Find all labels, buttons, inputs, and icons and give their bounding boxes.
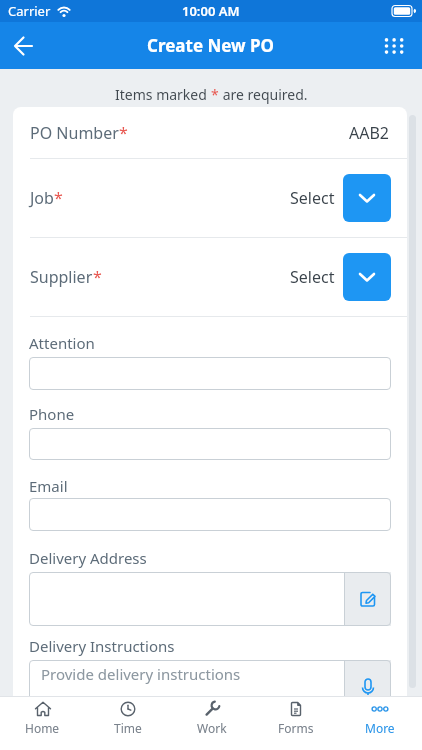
- staticText: Carrier: [8, 2, 51, 20]
- staticText: Phone: [29, 404, 75, 424]
- staticText: 10:00 AM: [182, 2, 240, 20]
- staticText: Home: [25, 720, 60, 736]
- staticText: Select: [290, 187, 335, 209]
- button[interactable]: [343, 253, 391, 301]
- staticText: Email: [29, 476, 68, 496]
- staticText: Create New PO: [147, 34, 275, 57]
- staticText: Work: [197, 720, 227, 736]
- button[interactable]: [29, 572, 391, 626]
- staticText: Items marked: [115, 85, 211, 104]
- staticText: AAB2: [349, 122, 390, 144]
- button[interactable]: More: [338, 697, 422, 750]
- staticText: More: [365, 720, 395, 736]
- button[interactable]: Forms: [254, 697, 338, 750]
- staticText: are required.: [219, 85, 308, 104]
- button[interactable]: [4, 26, 44, 66]
- staticText: Forms: [278, 720, 314, 736]
- staticText: PO Number: [30, 122, 119, 144]
- button[interactable]: Job: [30, 159, 391, 237]
- button[interactable]: [343, 174, 391, 222]
- staticText: Time: [114, 720, 142, 736]
- button[interactable]: Time: [85, 697, 170, 750]
- staticText: *: [54, 187, 63, 209]
- button[interactable]: [29, 498, 391, 531]
- staticText: Provide delivery instructions: [41, 664, 241, 684]
- button[interactable]: [29, 428, 391, 460]
- staticText: *: [211, 85, 219, 104]
- button[interactable]: [376, 28, 412, 64]
- button[interactable]: PO Number: [30, 107, 390, 158]
- staticText: Delivery Address: [29, 548, 147, 568]
- button[interactable]: Work: [170, 697, 254, 750]
- staticText: Supplier: [30, 266, 93, 288]
- staticText: Select: [290, 266, 335, 288]
- staticText: *: [119, 122, 128, 144]
- staticText: Job: [30, 187, 54, 209]
- staticText: *: [93, 266, 102, 288]
- button[interactable]: Home: [0, 697, 85, 750]
- staticText: Delivery Instructions: [29, 636, 175, 656]
- button[interactable]: [29, 357, 391, 390]
- button[interactable]: Supplier: [30, 238, 391, 316]
- staticText: Attention: [29, 333, 95, 353]
- button[interactable]: Provide delivery instructions: [29, 660, 391, 696]
